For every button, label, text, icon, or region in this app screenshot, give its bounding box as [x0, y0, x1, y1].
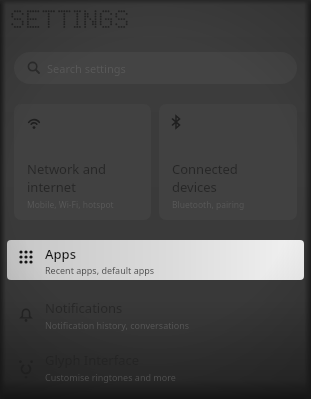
staticText: Search settings — [47, 61, 126, 76]
staticText: Bluetooth, pairing — [172, 199, 245, 211]
staticText: Notifications — [45, 299, 123, 317]
button[interactable]: Search settings — [14, 52, 297, 84]
staticText: Network and internet — [27, 160, 107, 196]
staticText: Connected devices — [172, 160, 238, 196]
button[interactable]: Notifications — [0, 293, 311, 337]
button[interactable]: Apps — [7, 240, 304, 280]
button[interactable]: Glyph Interface — [0, 345, 311, 389]
staticText: Apps — [45, 245, 76, 263]
staticText: Mobile, Wi-Fi, hotspot — [27, 199, 114, 211]
button[interactable]: Connected devices — [159, 104, 297, 220]
staticText: Notification history, conversations — [45, 319, 190, 331]
button[interactable]: Network and internet — [14, 104, 151, 220]
staticText: Recent apps, default apps — [45, 264, 155, 276]
staticText: Customise ringtones and more — [45, 371, 176, 383]
